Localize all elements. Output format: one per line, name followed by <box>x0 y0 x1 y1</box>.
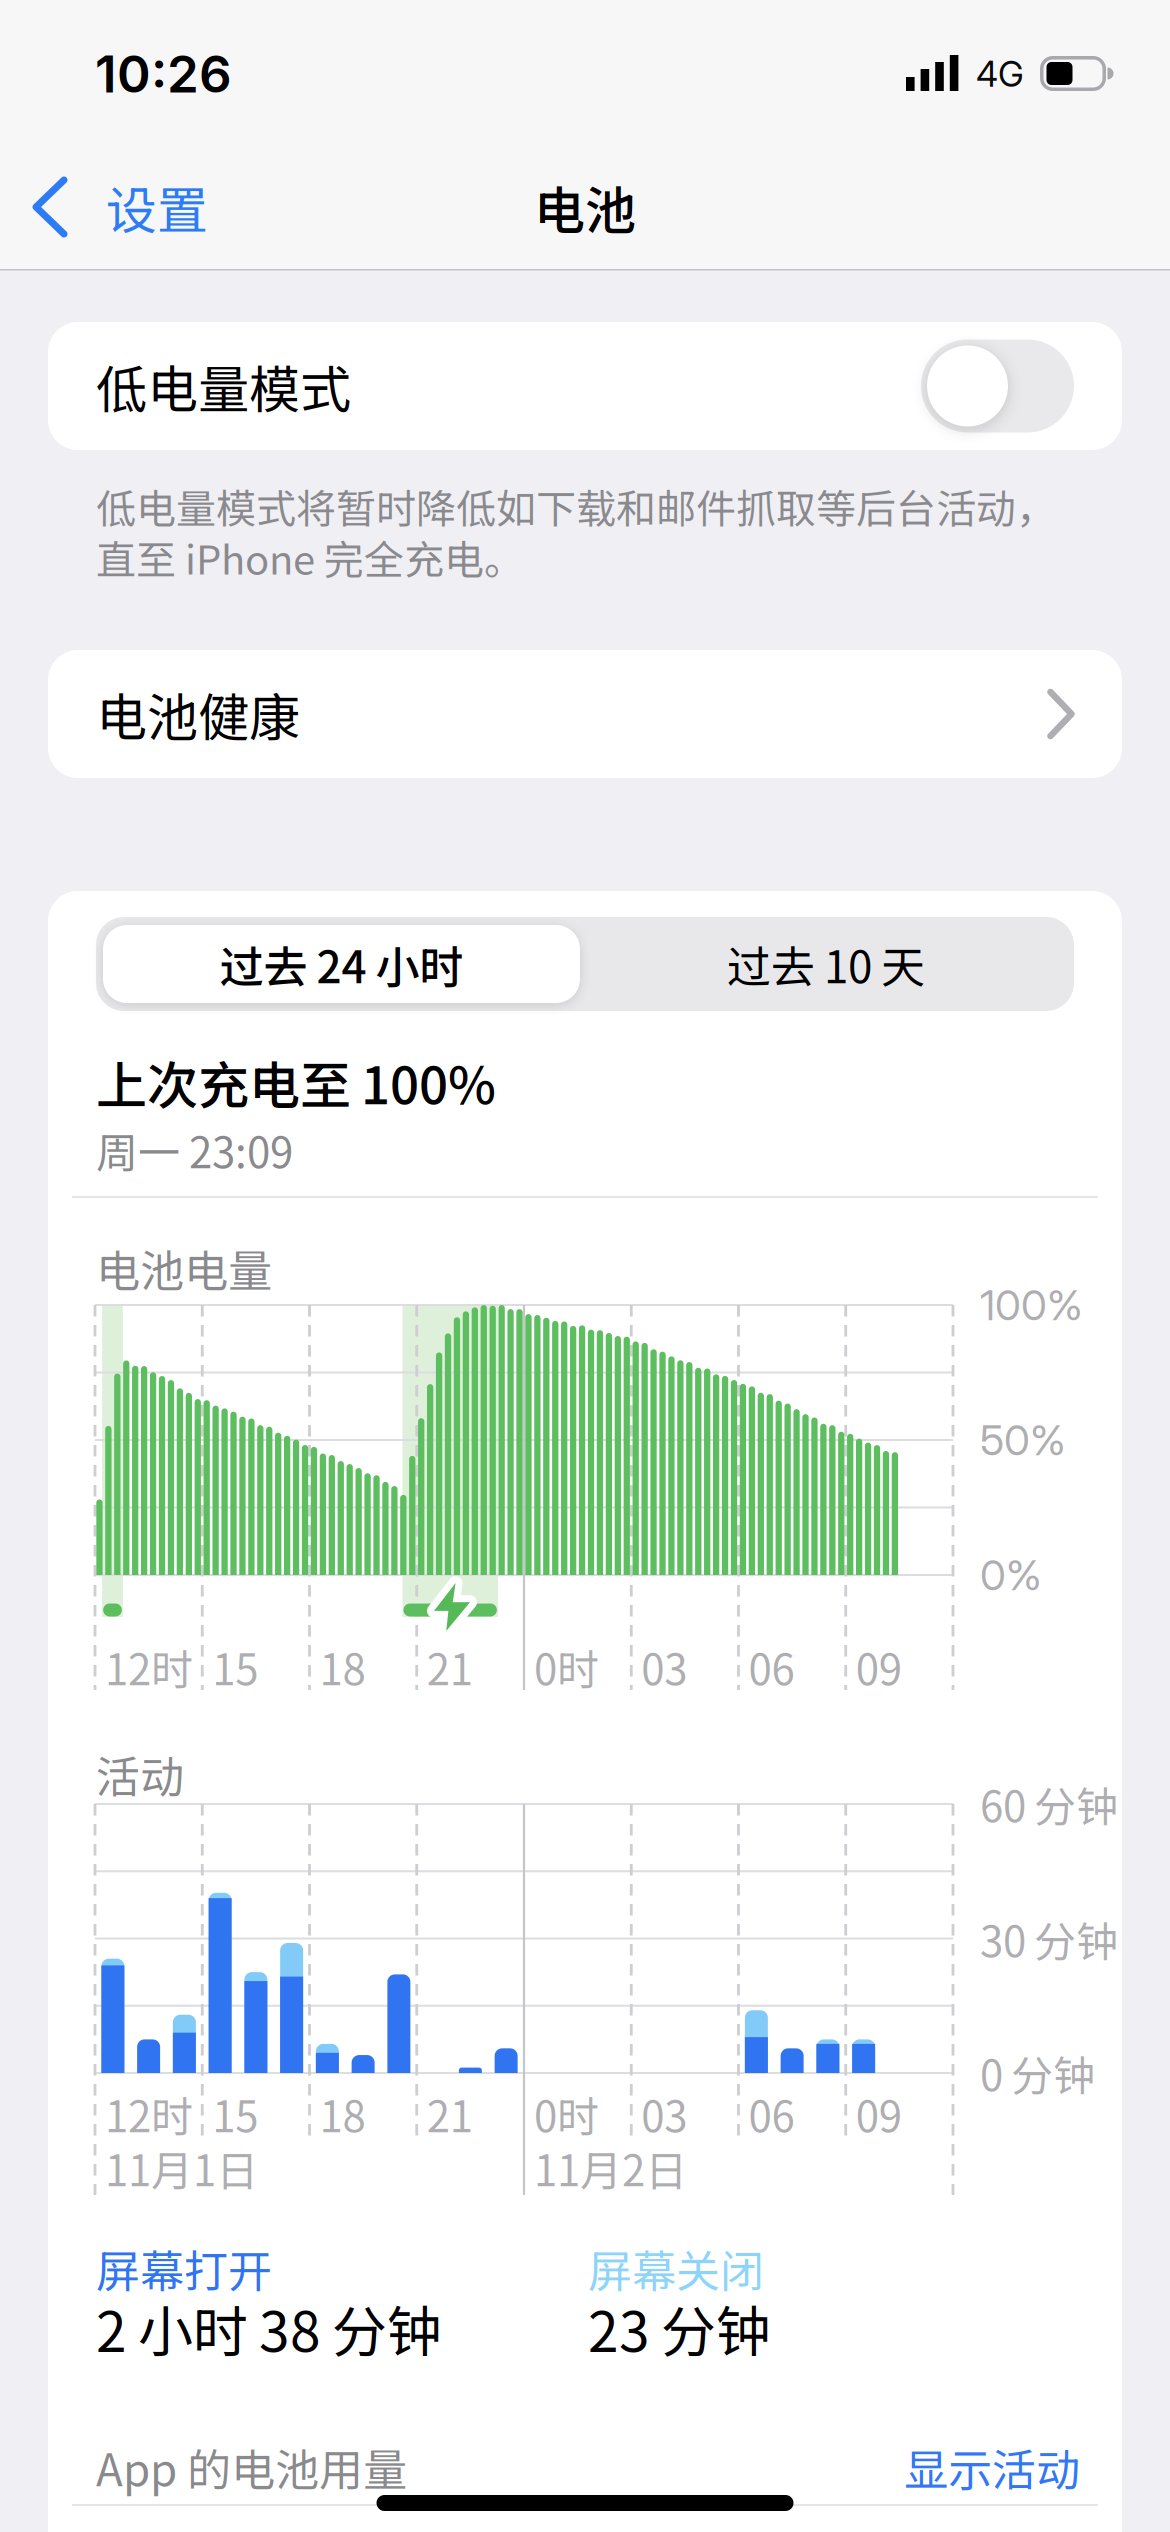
staticText: 显示活动 <box>904 2435 1080 2499</box>
staticText: 电池健康 <box>96 677 300 751</box>
staticText: 15 <box>212 1637 258 1697</box>
button[interactable]: 过去 24 小时 <box>103 925 580 1003</box>
staticText: 屏幕打开 <box>96 2236 272 2300</box>
staticText: 12时 <box>105 2084 193 2144</box>
button[interactable]: 返回设置 <box>18 162 238 252</box>
staticText: 11月1日 <box>105 2138 258 2198</box>
staticText: 4G <box>976 53 1024 95</box>
staticText: 活动 <box>96 1742 184 1806</box>
staticText: 0时 <box>534 2084 599 2144</box>
staticText: 屏幕关闭 <box>588 2236 764 2300</box>
staticText: 设置 <box>106 170 208 244</box>
staticText: 上次充电至 100% <box>96 1045 496 1119</box>
staticText: 30 分钟 <box>980 1909 1118 1969</box>
staticText: 过去 10 天 <box>727 932 925 996</box>
staticText: 电池电量 <box>96 1236 272 1300</box>
staticText: 03 <box>641 2084 687 2144</box>
staticText: 低电量模式 <box>96 349 351 423</box>
staticText: 电池 <box>534 170 636 244</box>
staticText: 2 小时 38 分钟 <box>96 2288 442 2368</box>
staticText: 03 <box>641 1637 687 1697</box>
staticText: 直至 iPhone 完全充电。 <box>96 528 524 586</box>
staticText: 18 <box>319 2084 365 2144</box>
staticText: 09 <box>856 2084 902 2144</box>
button[interactable]: 过去 10 天 <box>587 925 1064 1003</box>
staticText: 12时 <box>105 1637 193 1697</box>
staticText: 0% <box>980 1550 1042 1600</box>
staticText: 60 分钟 <box>980 1774 1118 1834</box>
staticText: 21 <box>427 2084 473 2144</box>
staticText: App 的电池用量 <box>96 2435 407 2499</box>
staticText: 过去 24 小时 <box>219 932 463 996</box>
staticText: 15 <box>212 2084 258 2144</box>
staticText: 21 <box>427 1637 473 1697</box>
staticText: 周一 23:09 <box>96 1120 293 1180</box>
staticText: 06 <box>748 1637 794 1697</box>
staticText: 低电量模式将暂时降低如下载和邮件抓取等后台活动， <box>96 477 1056 535</box>
staticText: 100% <box>980 1280 1083 1330</box>
button[interactable]: 显示活动 <box>780 2427 1080 2507</box>
staticText: 11月2日 <box>534 2138 687 2198</box>
staticText: 23 分钟 <box>588 2288 771 2368</box>
staticText: 50% <box>980 1415 1066 1465</box>
staticText: 18 <box>319 1637 365 1697</box>
button[interactable]: 电池健康 <box>48 650 1122 778</box>
staticText: 09 <box>856 1637 902 1697</box>
staticText: 06 <box>748 2084 794 2144</box>
staticText: 0 分钟 <box>980 2043 1095 2103</box>
button[interactable]: 低电量模式开关 <box>921 339 1074 432</box>
staticText: 10:26 <box>95 43 232 105</box>
staticText: 0时 <box>534 1637 599 1697</box>
